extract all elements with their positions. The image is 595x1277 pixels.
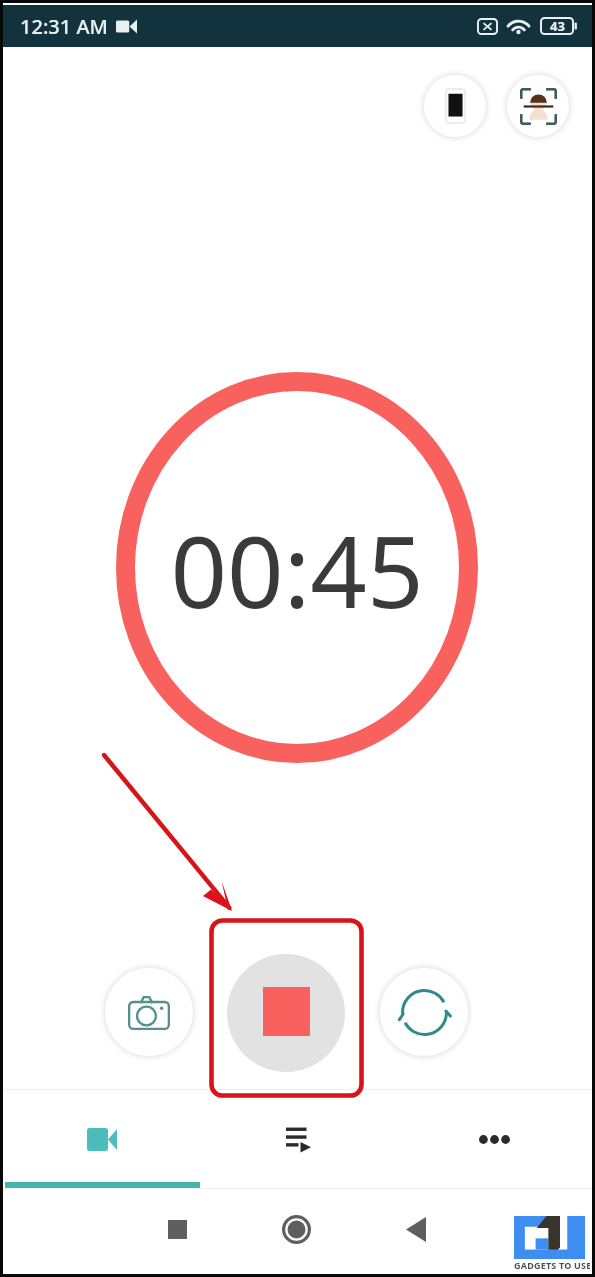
button[interactable]: More options: [396, 1090, 592, 1188]
button[interactable]: Home: [266, 1199, 326, 1259]
button[interactable]: Face cam: [500, 68, 576, 144]
staticText: GADGETS TO USE: [514, 1259, 590, 1271]
button[interactable]: Videos: [200, 1090, 396, 1188]
button[interactable]: Record screen: [417, 68, 493, 144]
button[interactable]: Back: [386, 1199, 446, 1259]
staticText: 00:45: [170, 502, 424, 637]
button[interactable]: Stop recording: [227, 954, 345, 1072]
button[interactable]: Take screenshot: [98, 961, 200, 1063]
button[interactable]: Switch camera: [373, 961, 475, 1063]
button[interactable]: Record: [3, 1090, 200, 1188]
button[interactable]: Recent apps: [147, 1199, 207, 1259]
staticText: 12:31 AM: [20, 13, 108, 40]
staticText: 43: [550, 17, 565, 35]
